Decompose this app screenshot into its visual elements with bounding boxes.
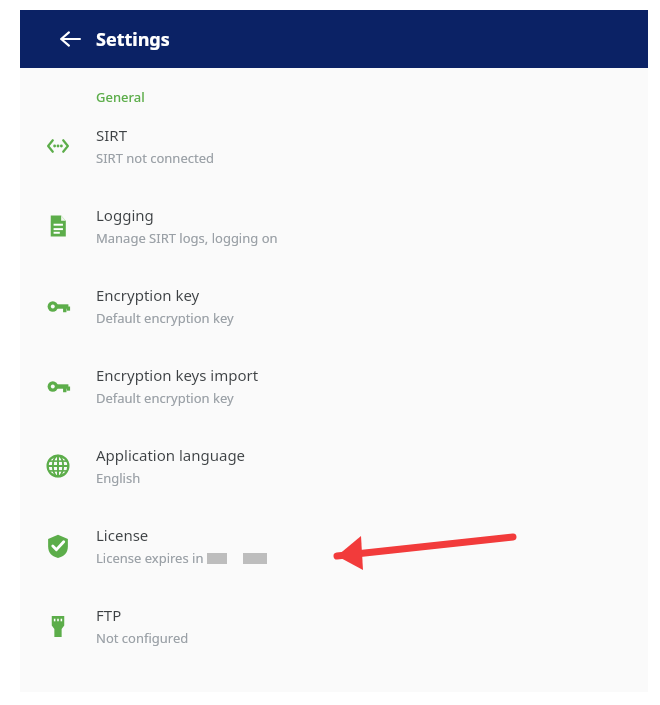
staticText: Encryption key — [96, 285, 200, 305]
staticText: Not configured — [96, 629, 189, 647]
button[interactable]: Back — [40, 10, 100, 68]
staticText: General — [96, 88, 145, 106]
staticText: Logging — [96, 205, 154, 225]
staticText: SIRT not connected — [96, 149, 214, 167]
button[interactable]: FTP — [20, 586, 648, 666]
staticText: License — [96, 525, 149, 545]
button[interactable]: License — [20, 506, 648, 586]
staticText: Manage SIRT logs, logging on — [96, 229, 278, 247]
button[interactable]: Encryption key — [20, 266, 648, 346]
button[interactable]: Application language — [20, 426, 648, 506]
staticText: Settings — [96, 27, 170, 52]
staticText: English — [96, 469, 141, 487]
staticText: License expires in — [96, 549, 207, 567]
staticText: Default encryption key — [96, 309, 234, 327]
staticText: Default encryption key — [96, 389, 234, 407]
staticText: SIRT — [96, 125, 127, 145]
staticText: Encryption keys import — [96, 365, 259, 385]
staticText: FTP — [96, 605, 122, 625]
button[interactable]: SIRT — [20, 106, 648, 186]
button[interactable]: Logging — [20, 186, 648, 266]
button[interactable]: Encryption keys import — [20, 346, 648, 426]
staticText: Application language — [96, 445, 246, 465]
